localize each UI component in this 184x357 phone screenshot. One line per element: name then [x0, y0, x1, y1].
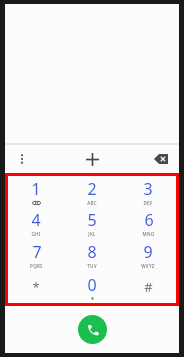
button[interactable]: 2 — [64, 176, 120, 207]
button[interactable]: 0 — [64, 271, 120, 303]
staticText: ABC — [87, 200, 97, 206]
staticText: PQRS — [30, 263, 43, 269]
staticText: 9 — [143, 241, 153, 263]
staticText: DEF — [143, 200, 153, 206]
staticText: GHI — [31, 231, 41, 237]
button[interactable]: More options — [11, 148, 33, 170]
button[interactable]: # — [120, 271, 176, 303]
staticText: MNO — [142, 231, 155, 237]
button[interactable]: 8 — [64, 239, 120, 271]
staticText: TUV — [87, 263, 97, 269]
staticText: 4 — [31, 209, 41, 231]
button[interactable]: 9 — [120, 239, 176, 271]
button[interactable]: * — [8, 271, 64, 303]
button[interactable]: Backspace — [149, 147, 173, 171]
button[interactable]: 5 — [64, 207, 120, 239]
staticText: 0 — [87, 274, 97, 296]
staticText: WXYZ — [141, 263, 155, 269]
staticText: 5 — [87, 209, 97, 231]
button[interactable]: 4 — [8, 207, 64, 239]
staticText: 2 — [87, 178, 97, 200]
staticText: 3 — [143, 178, 153, 200]
staticText: 1 — [31, 178, 41, 200]
button[interactable]: 3 — [120, 176, 176, 207]
staticText: # — [144, 278, 153, 296]
button[interactable]: 1 — [8, 176, 64, 207]
button[interactable]: Call — [78, 315, 107, 344]
staticText: * — [32, 278, 40, 296]
staticText: JKL — [88, 231, 96, 237]
staticText: 7 — [32, 241, 42, 263]
button[interactable]: Add number — [79, 146, 105, 172]
button[interactable]: 6 — [120, 207, 176, 239]
staticText: 8 — [87, 241, 97, 263]
button[interactable]: 7 — [8, 239, 64, 271]
staticText: 6 — [144, 209, 154, 231]
